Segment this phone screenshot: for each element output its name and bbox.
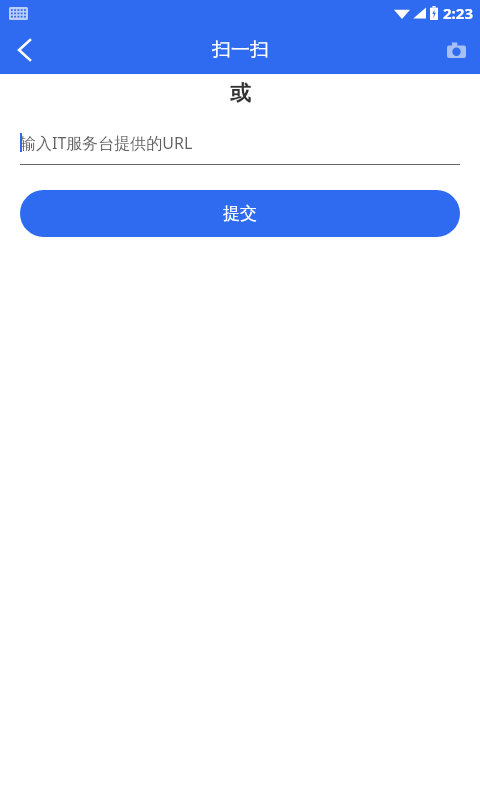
staticText: 或 xyxy=(230,80,251,106)
button[interactable]: Back xyxy=(0,26,48,74)
staticText: 输入IT服务台提供的URL xyxy=(20,132,193,154)
button[interactable]: 输入IT服务台提供的URL xyxy=(20,129,460,156)
staticText: 扫一扫 xyxy=(212,38,269,62)
staticText: 2:23 xyxy=(443,3,473,23)
button[interactable]: Camera xyxy=(432,26,480,74)
staticText: 提交 xyxy=(223,203,257,224)
button[interactable]: 提交 xyxy=(20,190,460,237)
